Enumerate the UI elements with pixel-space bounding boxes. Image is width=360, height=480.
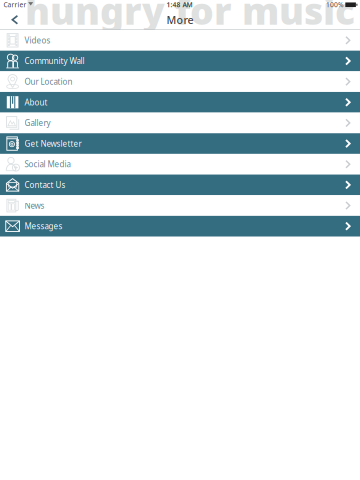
staticText: Carrier [4,0,27,9]
button[interactable]: News [0,195,360,216]
staticText: About [24,97,47,108]
staticText: News [24,200,44,211]
staticText: Messages [24,221,62,231]
button[interactable]: About [0,92,360,112]
button[interactable]: Community Wall [0,51,360,71]
staticText: Get Newsletter [24,138,81,149]
staticText: hungry for music [25,0,355,35]
staticText: 1:48 AM [166,0,192,9]
button[interactable]: Gallery [0,113,360,133]
staticText: Our Location [24,76,72,87]
staticText: 100% [326,0,344,9]
staticText: Social Media [24,159,70,169]
button[interactable]: Social Media [0,154,360,174]
staticText: Contact Us [24,180,65,190]
button[interactable]: Get Newsletter [0,133,360,154]
button[interactable]: Our Location [0,71,360,92]
staticText: Videos [24,35,50,46]
button[interactable]: Back [0,9,33,30]
button[interactable]: Messages [0,216,360,236]
staticText: More [166,13,193,27]
button[interactable]: Contact Us [0,174,360,195]
button[interactable]: Videos [0,30,360,51]
staticText: Gallery [24,118,50,128]
staticText: Community Wall [24,56,84,66]
